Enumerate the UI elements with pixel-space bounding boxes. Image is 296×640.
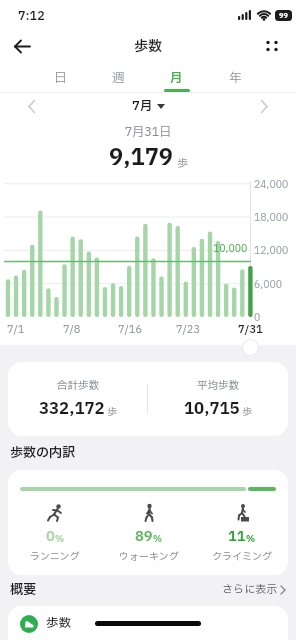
button[interactable]: 歩数 <box>20 614 201 633</box>
button[interactable] <box>266 40 278 52</box>
staticText: 7:12 <box>18 7 45 25</box>
button[interactable]: 0 <box>8 503 102 564</box>
staticText: 月 <box>170 69 183 88</box>
staticText: ウォーキング <box>119 549 179 564</box>
staticText: 週 <box>112 69 125 88</box>
staticText: 7/1 <box>7 322 25 338</box>
staticText: ランニング <box>30 549 80 564</box>
staticText: 7/31 <box>238 322 263 338</box>
button[interactable]: 月 <box>147 64 206 92</box>
button[interactable]: 年 <box>206 64 265 92</box>
staticText: 平均歩数 <box>197 378 239 394</box>
staticText: 0 <box>46 526 55 547</box>
staticText: % <box>246 532 256 545</box>
staticText: 7/8 <box>63 322 81 338</box>
button[interactable]: 平均歩数 <box>148 362 288 436</box>
staticText: 歩 <box>107 404 117 419</box>
staticText: 6,000 <box>254 277 283 292</box>
staticText: 99 <box>279 11 288 21</box>
staticText: 歩 <box>177 155 188 172</box>
staticText: % <box>55 532 65 545</box>
staticText: 歩数の内訳 <box>10 443 76 462</box>
button[interactable]: 合計歩数 <box>8 362 147 436</box>
button[interactable] <box>260 100 268 113</box>
staticText: 12,000 <box>254 243 289 258</box>
staticText: 歩 <box>242 404 252 419</box>
staticText: 合計歩数 <box>57 378 99 394</box>
staticText: クライミング <box>212 549 272 564</box>
button[interactable]: 日 <box>31 64 89 92</box>
staticText: % <box>153 532 163 545</box>
staticText: 89 <box>135 526 153 547</box>
staticText: 年 <box>229 69 242 88</box>
staticText: 7月 <box>132 97 153 116</box>
staticText: 歩数 <box>134 36 162 57</box>
button[interactable]: さらに表示 <box>222 581 286 598</box>
button[interactable] <box>14 38 31 55</box>
staticText: 7月31日 <box>0 123 296 141</box>
staticText: 0 <box>254 310 261 325</box>
button[interactable]: 11 <box>195 503 288 564</box>
staticText: 24,000 <box>254 177 289 192</box>
staticText: 10,000 <box>213 241 248 256</box>
staticText: 概要 <box>10 580 37 599</box>
staticText: 歩数 <box>46 614 72 633</box>
button[interactable]: 週 <box>89 64 147 92</box>
button[interactable]: 89 <box>102 503 195 564</box>
staticText: 7/16 <box>118 322 143 338</box>
staticText: 日 <box>54 69 67 88</box>
staticText: 7/23 <box>176 322 201 338</box>
staticText: 10,715 <box>184 397 240 421</box>
button[interactable] <box>28 100 36 113</box>
staticText: さらに表示 <box>222 581 277 598</box>
staticText: 9,179 <box>109 141 174 175</box>
staticText: 332,172 <box>39 397 105 421</box>
button[interactable]: 7月 <box>132 97 165 116</box>
staticText: 11 <box>228 526 246 547</box>
staticText: 18,000 <box>254 210 289 225</box>
